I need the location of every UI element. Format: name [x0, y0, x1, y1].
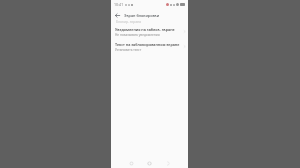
- button[interactable]: Назад: [126, 158, 137, 168]
- button[interactable]: Текст на заблокированном экране: [111, 39, 188, 54]
- staticText: Экран блокировки: [124, 13, 160, 18]
- button[interactable]: Назад: [111, 10, 124, 20]
- button[interactable]: Главная: [144, 158, 155, 168]
- staticText: Текст на заблокированном экране: [115, 42, 180, 47]
- staticText: Установить текст: [115, 48, 142, 52]
- staticText: 10:41: [114, 2, 124, 7]
- staticText: Блокир. экрана: [116, 19, 142, 24]
- staticText: Не показывать уведомления: [115, 33, 160, 37]
- button[interactable]: Уведомления на заблок. экране: [111, 24, 188, 39]
- staticText: Уведомления на заблок. экране: [115, 27, 175, 32]
